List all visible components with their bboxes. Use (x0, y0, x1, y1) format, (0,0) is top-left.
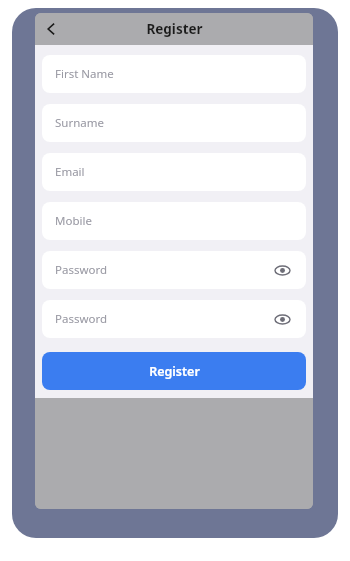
button[interactable]: Mobile (42, 202, 306, 240)
button[interactable]: Surname (42, 104, 306, 142)
staticText: Password (55, 311, 108, 327)
staticText: Mobile (55, 213, 92, 229)
button[interactable]: Email (42, 153, 306, 191)
button[interactable]: Back (35, 13, 67, 45)
staticText: First Name (55, 66, 114, 82)
button[interactable]: First Name (42, 55, 306, 93)
staticText: Register (149, 363, 200, 380)
staticText: Email (55, 164, 85, 180)
staticText: Surname (55, 115, 104, 131)
button[interactable]: Password (42, 251, 306, 289)
button[interactable]: Show password (271, 308, 293, 330)
staticText: Password (55, 262, 108, 278)
button[interactable]: Show password (271, 259, 293, 281)
button[interactable]: Password (42, 300, 306, 338)
staticText: Register (146, 20, 203, 38)
button[interactable]: Register (42, 352, 306, 390)
